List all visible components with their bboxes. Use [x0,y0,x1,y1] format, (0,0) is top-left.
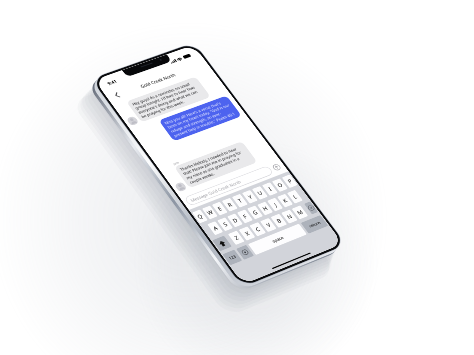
staticText: Miss you all! Here's a verse that's been… [163,98,237,138]
staticText: 123 [227,254,237,261]
button[interactable]: A [207,221,223,235]
staticText: H [261,205,269,213]
staticText: N [285,213,294,221]
button[interactable]: O [272,178,288,192]
staticText: space [271,235,285,244]
staticText: D [231,216,240,224]
button[interactable]: D [227,213,243,227]
button[interactable]: Back [108,88,126,102]
staticText: G [251,209,259,217]
button[interactable]: Miss you all! Here's a verse that's been… [158,95,242,141]
staticText: O [276,181,284,189]
button[interactable]: V [260,218,277,232]
staticText: R [226,201,234,209]
staticText: W [205,208,215,217]
staticText: I [267,185,273,193]
staticText: Message Gold Creek North [189,179,242,203]
button[interactable]: Message Gold Creek North [184,165,274,206]
button[interactable]: K [277,194,293,208]
button[interactable]: B [270,213,287,228]
staticText: Thanks Melody, I needed to hear that! Pl… [179,144,253,185]
staticText: X [243,230,251,237]
button[interactable]: L [287,190,303,204]
button[interactable]: space [248,223,307,255]
staticText: T [236,197,244,205]
staticText: P [286,177,294,185]
staticText: S [221,220,229,228]
staticText: A [211,224,219,232]
staticText: U [256,189,264,197]
button[interactable]: Emoji [236,245,254,260]
button[interactable]: P [282,174,298,188]
button[interactable]: H [257,201,273,215]
staticText: M [295,208,305,217]
staticText: 9:41 [106,78,118,86]
button[interactable]: Thanks Melody, I needed to hear that! Pl… [174,141,258,188]
button[interactable]: Q [192,209,208,223]
button[interactable]: I [262,182,278,196]
button[interactable]: S [217,217,233,231]
staticText: F [241,213,249,220]
staticText: L [291,193,299,201]
staticText: Y [246,193,254,201]
button[interactable]: F [237,209,253,223]
button[interactable]: Hey guys! As a reminder, no small group … [126,76,211,122]
button[interactable]: C [249,222,266,236]
staticText: Q [195,212,204,221]
button[interactable]: U [252,186,268,200]
button[interactable]: G [247,205,263,220]
staticText: Z [233,234,240,242]
staticText: V [265,221,272,229]
staticText: E [216,205,224,213]
button[interactable]: T [232,194,248,208]
button[interactable]: W [202,205,218,219]
button[interactable]: J [267,197,283,212]
staticText: Gold Creek North [139,72,177,89]
button[interactable]: E [212,201,228,216]
button[interactable]: Shift [212,235,232,251]
button[interactable]: Delete [304,201,318,215]
button[interactable]: X [238,226,256,241]
staticText: Hey guys! As a reminder, no small group … [131,79,206,119]
button[interactable]: Send [270,162,284,173]
staticText: C [254,225,262,233]
button[interactable]: Y [242,190,258,204]
staticText: Jane [172,160,180,166]
button[interactable]: 123 [222,249,242,265]
button[interactable]: R [222,198,238,212]
button[interactable]: return [301,215,328,234]
staticText: return [308,220,322,229]
button[interactable]: Gold Creek North [139,72,177,89]
staticText: B [275,217,283,225]
staticText: J [272,201,278,208]
button[interactable]: N [281,209,298,224]
button[interactable]: M [291,205,308,219]
button[interactable]: Z [228,230,245,245]
staticText: K [281,197,289,205]
